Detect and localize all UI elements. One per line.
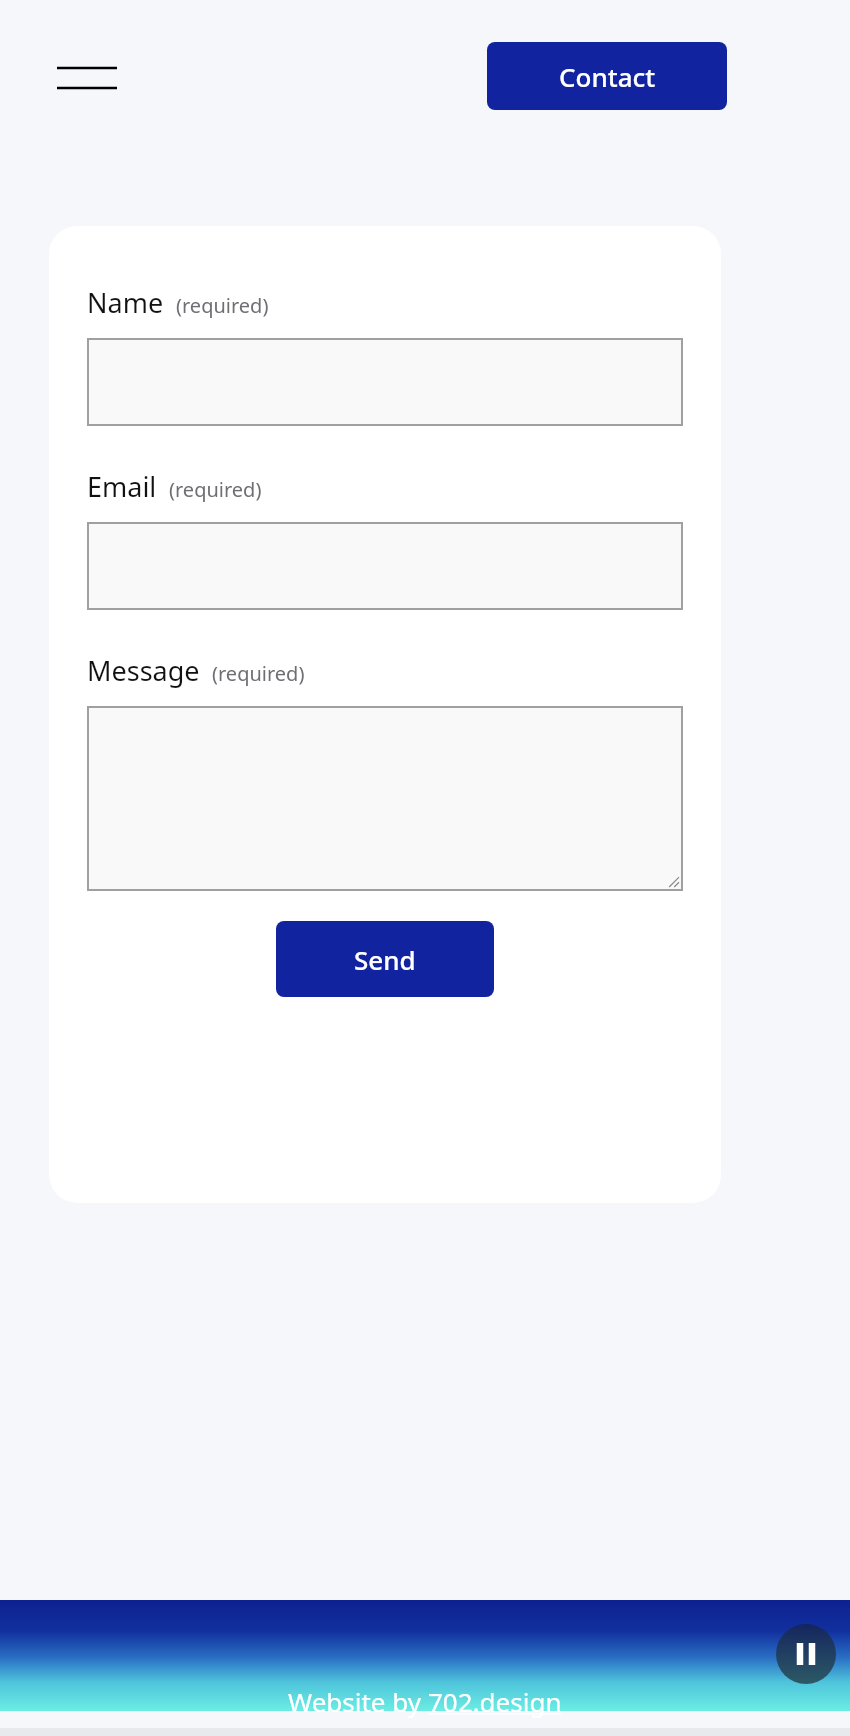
staticText: Email: [87, 468, 157, 505]
button[interactable]: Send: [276, 921, 494, 997]
staticText: (required): [212, 660, 305, 687]
staticText: (required): [169, 476, 262, 503]
staticText: 702.design: [428, 1684, 562, 1719]
staticText: Message: [87, 652, 200, 689]
button[interactable]: [87, 706, 683, 891]
staticText: Contact: [559, 59, 656, 94]
staticText: Website by: [288, 1684, 428, 1719]
staticText: (required): [176, 292, 269, 319]
staticText: Name: [87, 284, 164, 321]
button[interactable]: [87, 522, 683, 610]
button[interactable]: [87, 338, 683, 426]
button[interactable]: Website by: [288, 1684, 562, 1719]
button[interactable]: Pause: [776, 1624, 836, 1684]
staticText: Send: [354, 942, 416, 977]
button[interactable]: Contact: [487, 42, 727, 110]
button[interactable]: Open menu: [45, 52, 129, 100]
